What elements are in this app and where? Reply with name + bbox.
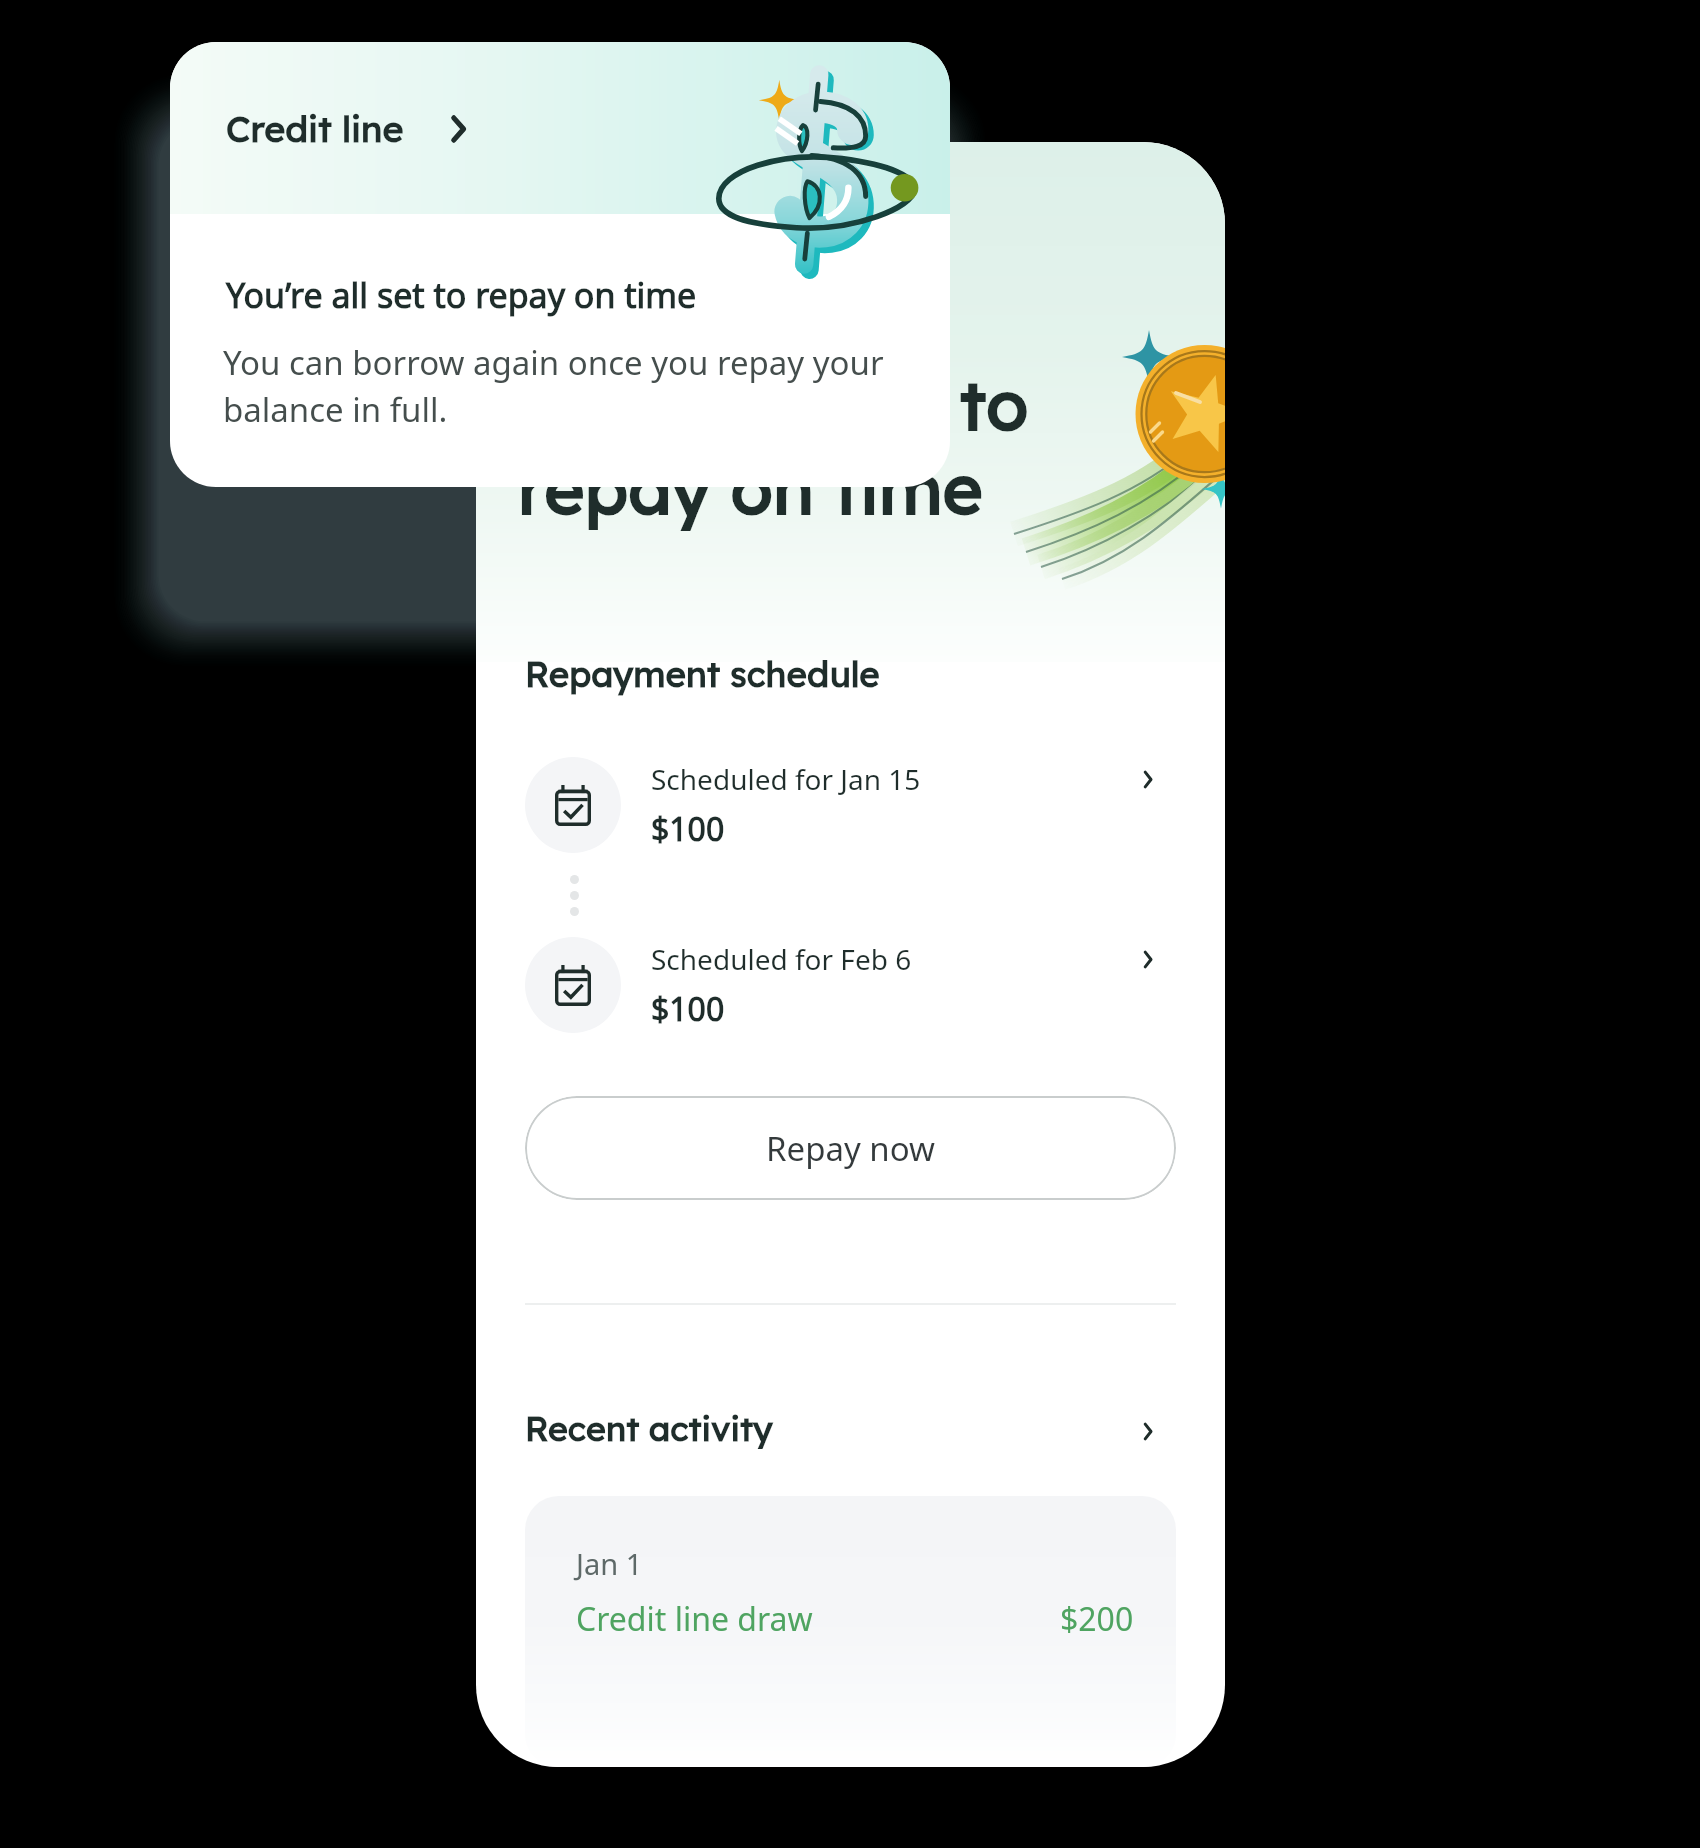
other: View payment details xyxy=(1143,771,1153,788)
button[interactable]: Jan 1 xyxy=(525,1496,1176,1767)
other: See all recent activity xyxy=(1143,1423,1153,1440)
staticText: Repayment schedule xyxy=(525,652,880,696)
staticText: Repay now xyxy=(766,1126,935,1171)
other: Open credit line xyxy=(450,116,467,142)
button[interactable]: Scheduled for Feb 6 xyxy=(525,937,1176,1033)
button[interactable]: Recent activity xyxy=(525,1407,1176,1450)
button[interactable]: Credit line xyxy=(226,106,467,151)
staticText: Recent activity xyxy=(525,1407,773,1450)
staticText: $100 xyxy=(651,987,725,1031)
button[interactable]: Repay now xyxy=(525,1096,1176,1200)
staticText: Credit line xyxy=(226,106,404,151)
staticText: You’re all set to repay on time xyxy=(518,361,1029,531)
button[interactable]: Scheduled for Jan 15 xyxy=(525,757,1176,853)
staticText: $200 xyxy=(1060,1597,1134,1641)
staticText: Credit line draw xyxy=(576,1597,813,1641)
staticText: Jan 1 xyxy=(576,1544,643,1583)
staticText: $100 xyxy=(651,807,725,851)
staticText: You can borrow again once you repay your… xyxy=(223,340,923,432)
staticText: Scheduled for Feb 6 xyxy=(651,940,912,978)
other: View payment details xyxy=(1143,951,1153,968)
staticText: You’re all set to repay on time xyxy=(226,272,697,318)
staticText: Scheduled for Jan 15 xyxy=(651,760,921,798)
